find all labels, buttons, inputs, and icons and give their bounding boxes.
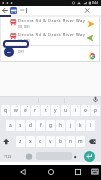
button[interactable]: b xyxy=(56,136,65,147)
staticText: b xyxy=(59,138,63,145)
staticText: h xyxy=(59,122,63,129)
button[interactable] xyxy=(10,7,17,14)
staticText: 1 xyxy=(6,105,8,108)
button[interactable]: v xyxy=(46,136,55,147)
staticText: 08, D81 xyxy=(18,38,31,43)
button[interactable]: w xyxy=(11,105,20,116)
staticText: y xyxy=(54,107,57,114)
button[interactable]: j xyxy=(66,120,75,131)
button[interactable] xyxy=(84,151,95,162)
staticText: 08, D81 xyxy=(18,24,31,29)
button[interactable] xyxy=(82,6,92,15)
staticText: x xyxy=(29,138,32,145)
staticText: ?123 xyxy=(4,154,12,159)
staticText: Decota Rd & Ozark River Way xyxy=(18,18,86,24)
button[interactable]: i xyxy=(71,105,80,116)
button[interactable] xyxy=(72,151,80,162)
button[interactable]: h xyxy=(56,120,65,131)
button[interactable]: Decota Rd & Ozark River Way xyxy=(1,17,100,31)
staticText: k xyxy=(79,122,82,129)
staticText: e xyxy=(24,107,27,114)
button[interactable]: g xyxy=(46,120,55,131)
staticText: s xyxy=(19,122,22,129)
staticText: i xyxy=(75,107,77,114)
button[interactable] xyxy=(87,136,101,147)
staticText: 8:44 xyxy=(92,1,99,5)
button[interactable] xyxy=(88,165,101,180)
button[interactable] xyxy=(43,165,59,180)
button[interactable]: a xyxy=(6,120,15,131)
button[interactable]: f xyxy=(36,120,45,131)
staticText: l xyxy=(90,122,92,129)
button[interactable]: o xyxy=(81,105,90,116)
staticText: 4 xyxy=(37,105,39,108)
staticText: D81 xyxy=(18,49,25,54)
button[interactable]: r xyxy=(31,105,40,116)
staticText: D81 xyxy=(7,51,12,54)
button[interactable]: k xyxy=(76,120,85,131)
button[interactable] xyxy=(70,165,86,180)
button[interactable]: e xyxy=(21,105,30,116)
button[interactable]: p xyxy=(91,105,100,116)
button[interactable]: y xyxy=(51,105,60,116)
button[interactable]: q xyxy=(1,105,10,116)
staticText: w xyxy=(14,107,18,114)
staticText: 6 xyxy=(57,105,59,108)
staticText: g xyxy=(49,122,53,129)
button[interactable] xyxy=(1,6,9,15)
staticText: 7 xyxy=(67,105,69,108)
staticText: v xyxy=(49,138,52,145)
button[interactable]: z xyxy=(16,136,25,147)
button[interactable]: n xyxy=(66,136,75,147)
button[interactable]: u xyxy=(61,105,70,116)
staticText: 3 xyxy=(27,105,29,108)
button[interactable]: x xyxy=(26,136,35,147)
button[interactable] xyxy=(90,96,101,103)
staticText: m xyxy=(78,138,83,145)
button[interactable]: t xyxy=(41,105,50,116)
staticText: j xyxy=(70,122,72,129)
staticText: u xyxy=(64,107,68,114)
staticText: n xyxy=(69,138,73,145)
staticText: 8 xyxy=(77,105,79,108)
button[interactable]: c xyxy=(36,136,45,147)
button[interactable]: s xyxy=(16,120,25,131)
button[interactable]: l xyxy=(86,120,95,131)
staticText: 0 xyxy=(97,105,99,108)
staticText: z xyxy=(19,138,22,145)
staticText: o xyxy=(84,107,87,114)
button[interactable]: Decota Rd & Ozark River Way xyxy=(1,31,100,45)
staticText: c xyxy=(39,138,42,145)
staticText: oc xyxy=(20,7,25,13)
button[interactable]: d xyxy=(26,120,35,131)
staticText: r xyxy=(34,107,37,114)
staticText: f xyxy=(40,122,42,129)
staticText: q xyxy=(4,107,8,114)
staticText: 2 xyxy=(17,105,19,108)
staticText: d xyxy=(29,122,33,129)
staticText: p xyxy=(94,107,98,114)
button[interactable] xyxy=(15,165,31,180)
staticText: t xyxy=(45,107,47,114)
staticText: 9 xyxy=(87,105,89,108)
staticText: 5 xyxy=(47,105,49,108)
button[interactable]: D81 xyxy=(1,46,100,61)
button[interactable]: ?123 xyxy=(1,151,14,162)
button[interactable] xyxy=(1,136,14,147)
staticText: a xyxy=(9,122,12,129)
staticText: Decota Rd & Ozark River Way xyxy=(18,32,86,38)
button[interactable] xyxy=(24,151,34,162)
button[interactable]: m xyxy=(76,136,85,147)
